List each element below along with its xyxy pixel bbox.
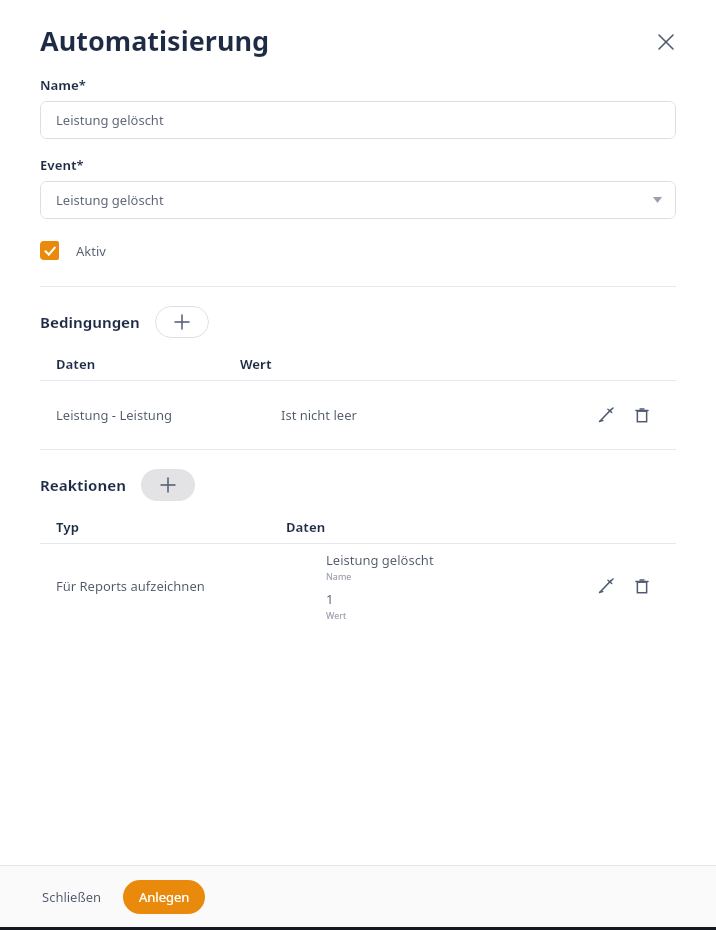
button[interactable]: Bearbeiten [590, 399, 622, 431]
staticText: Daten [286, 518, 326, 536]
staticText: Wert [326, 609, 347, 621]
staticText: Typ [56, 518, 79, 536]
staticText: Aktiv [76, 242, 106, 260]
staticText: Leistung gelöscht [56, 191, 164, 209]
staticText: 1 [326, 590, 334, 608]
button[interactable]: Hinzufügen [141, 469, 195, 501]
staticText: Name [326, 570, 352, 582]
staticText: Für Reports aufzeichnen [56, 577, 205, 595]
button[interactable]: Anlegen [123, 880, 205, 914]
staticText: Leistung - Leistung [56, 406, 172, 424]
button[interactable]: Schließen [646, 22, 686, 62]
button[interactable]: Leistung gelöscht [40, 181, 676, 219]
staticText: Ist nicht leer [281, 406, 357, 424]
button[interactable]: Bearbeiten [590, 570, 622, 602]
button[interactable]: Schließen [40, 879, 104, 915]
button[interactable]: Löschen [626, 399, 658, 431]
staticText: Daten [56, 355, 96, 373]
staticText: Reaktionen [40, 475, 126, 495]
staticText: Wert [240, 355, 272, 373]
staticText: Bedingungen [40, 312, 140, 332]
staticText: Automatisierung [40, 22, 270, 59]
staticText: Schließen [42, 888, 102, 906]
staticText: Anlegen [139, 888, 190, 906]
staticText: Event* [40, 156, 84, 174]
staticText: Leistung gelöscht [326, 551, 434, 569]
button[interactable]: Hinzufügen [155, 306, 209, 338]
staticText: Leistung gelöscht [56, 111, 164, 129]
button[interactable]: Aktiv [40, 241, 120, 260]
button[interactable]: Leistung gelöscht [40, 101, 676, 139]
button[interactable]: Löschen [626, 570, 658, 602]
staticText: Name* [40, 76, 86, 94]
